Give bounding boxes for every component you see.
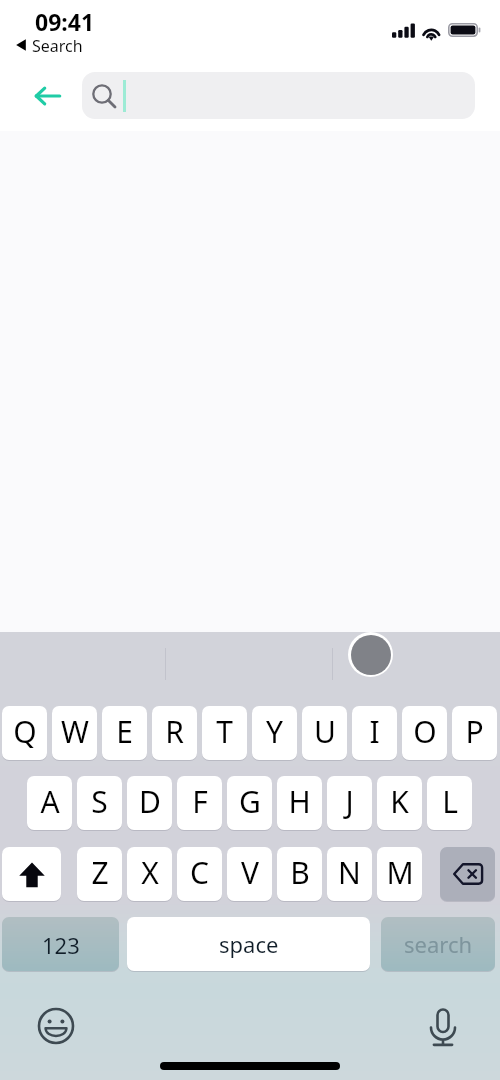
button[interactable]	[82, 72, 475, 119]
button[interactable]: Q	[2, 706, 47, 760]
button[interactable]: A	[27, 776, 72, 830]
button[interactable]: K	[377, 776, 422, 830]
button[interactable]: D	[127, 776, 172, 830]
button[interactable]: 123	[2, 917, 119, 971]
button[interactable]: space	[127, 917, 370, 971]
button[interactable]: R	[152, 706, 197, 760]
button[interactable]: E	[102, 706, 147, 760]
staticText: Y	[266, 711, 283, 752]
staticText: F	[192, 781, 208, 822]
staticText: I	[369, 711, 380, 752]
button[interactable]: M	[377, 847, 422, 901]
button[interactable]: search	[381, 917, 495, 971]
staticText: A	[40, 781, 60, 822]
staticText: S	[91, 781, 108, 822]
button[interactable]: X	[127, 847, 172, 901]
staticText: P	[465, 711, 484, 752]
button[interactable]: H	[277, 776, 322, 830]
button[interactable]: Back	[26, 74, 70, 118]
button[interactable]: Delete	[440, 847, 495, 901]
button[interactable]: W	[52, 706, 97, 760]
button[interactable]: O	[402, 706, 447, 760]
button[interactable]: Y	[252, 706, 297, 760]
button[interactable]: N	[327, 847, 372, 901]
staticText: G	[239, 781, 261, 822]
button[interactable]: Contact	[351, 635, 391, 675]
button[interactable]: B	[277, 847, 322, 901]
staticText: space	[219, 929, 279, 959]
staticText: W	[61, 711, 89, 752]
staticText: C	[190, 852, 209, 893]
staticText: D	[139, 781, 161, 822]
staticText: E	[116, 711, 133, 752]
staticText: B	[290, 852, 310, 893]
staticText: 123	[42, 930, 80, 960]
button[interactable]: S	[77, 776, 122, 830]
staticText: N	[338, 852, 361, 893]
staticText: K	[390, 781, 409, 822]
button[interactable]: U	[302, 706, 347, 760]
button[interactable]: G	[227, 776, 272, 830]
button[interactable]: L	[427, 776, 472, 830]
button[interactable]: P	[452, 706, 497, 760]
staticText: 09:41	[35, 6, 95, 37]
staticText: R	[165, 711, 184, 752]
button[interactable]: I	[352, 706, 397, 760]
staticText: O	[413, 711, 437, 752]
button[interactable]: T	[202, 706, 247, 760]
button[interactable]: Emoji	[34, 1004, 78, 1048]
button[interactable]: Shift	[2, 847, 61, 901]
staticText: Search	[32, 35, 83, 57]
button[interactable]: J	[327, 776, 372, 830]
button[interactable]: Z	[77, 847, 122, 901]
button[interactable]: F	[177, 776, 222, 830]
staticText: X	[141, 852, 159, 893]
staticText: U	[314, 711, 336, 752]
staticText: Q	[13, 711, 37, 752]
staticText: L	[442, 781, 458, 822]
staticText: Z	[91, 852, 109, 893]
button[interactable]: C	[177, 847, 222, 901]
staticText: search	[404, 929, 473, 959]
staticText: H	[288, 781, 311, 822]
staticText: J	[345, 781, 354, 822]
staticText: V	[241, 852, 259, 893]
staticText: T	[216, 711, 233, 752]
button[interactable]: Voice input	[421, 1003, 465, 1047]
staticText: M	[386, 852, 414, 893]
button[interactable]: V	[227, 847, 272, 901]
